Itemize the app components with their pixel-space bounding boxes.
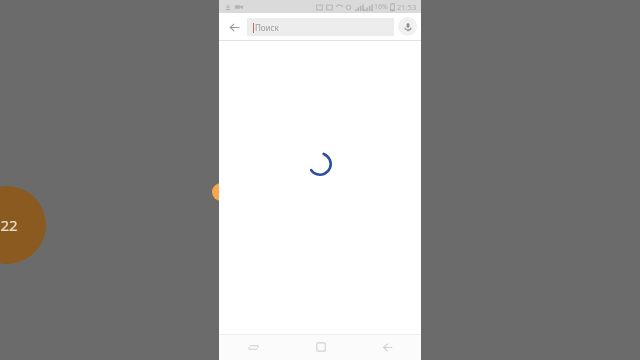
staticText: Поиск — [255, 22, 279, 33]
button[interactable]: Back — [224, 17, 244, 37]
staticText: :22 — [0, 215, 18, 235]
staticText: 16% — [374, 2, 388, 12]
button[interactable]: Recent apps — [219, 334, 287, 360]
button[interactable]: Поиск — [247, 18, 394, 36]
button[interactable]: Home — [287, 334, 354, 360]
button[interactable]: Back — [354, 334, 421, 360]
staticText: 21:53 — [397, 2, 417, 12]
button[interactable]: Voice search — [398, 17, 417, 36]
